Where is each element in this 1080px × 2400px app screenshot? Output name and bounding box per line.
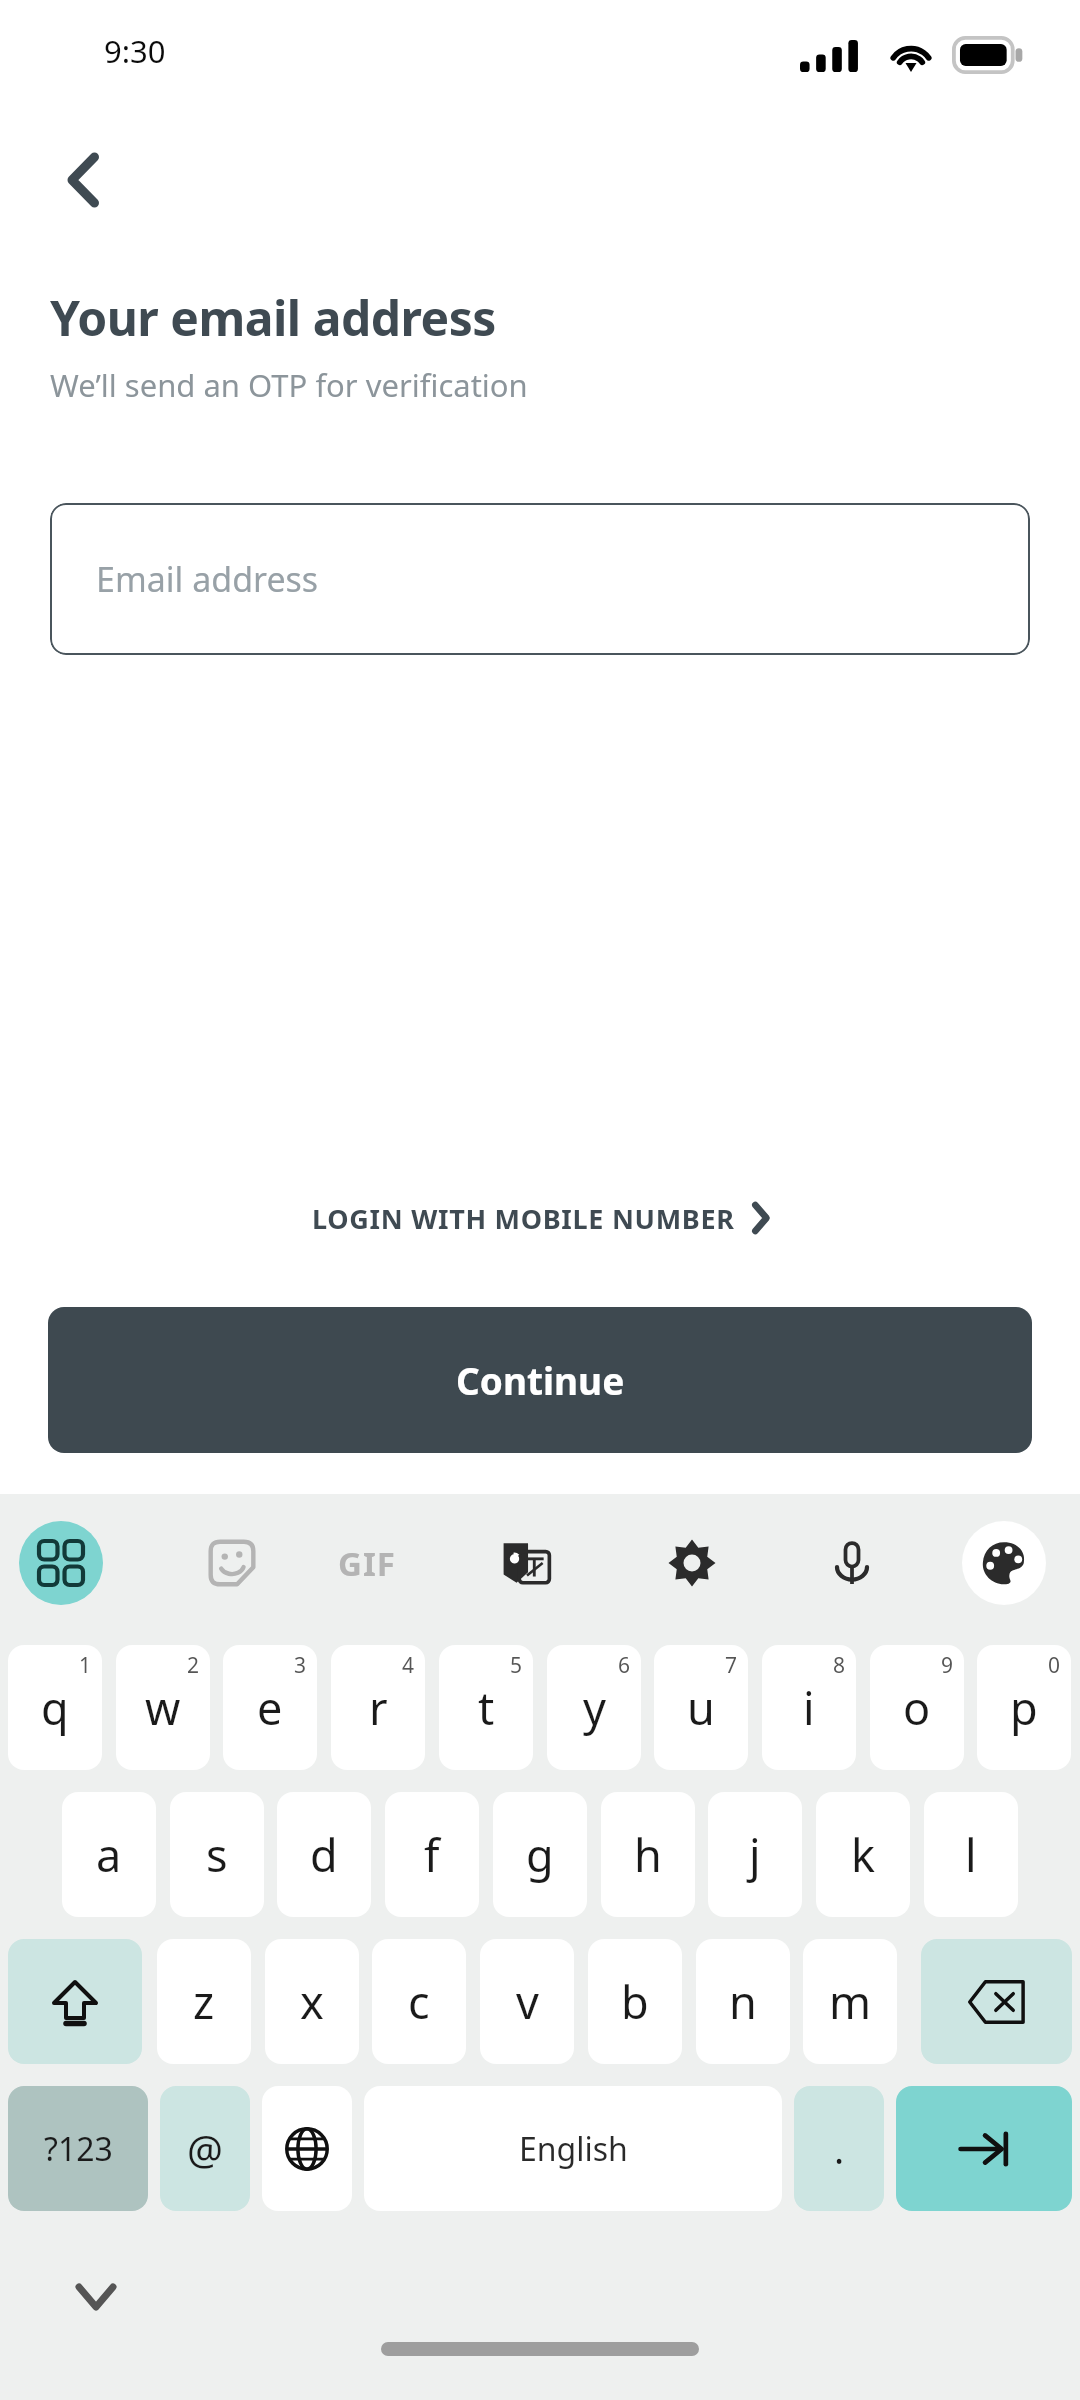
button[interactable]: r: [331, 1645, 425, 1770]
staticText: 5: [510, 1651, 523, 1680]
button[interactable]: Settings: [650, 1521, 734, 1605]
button[interactable]: Stickers: [190, 1521, 274, 1605]
staticText: 2: [187, 1651, 200, 1680]
staticText: w: [145, 1677, 181, 1738]
staticText: y: [583, 1677, 606, 1738]
button[interactable]: u: [654, 1645, 748, 1770]
staticText: f: [424, 1824, 440, 1885]
staticText: q: [41, 1677, 69, 1738]
staticText: @: [187, 2122, 223, 2176]
staticText: English: [519, 2127, 628, 2171]
staticText: k: [851, 1824, 876, 1885]
button[interactable]: i: [762, 1645, 856, 1770]
button[interactable]: v: [480, 1939, 574, 2064]
staticText: i: [803, 1677, 815, 1738]
button[interactable]: z: [157, 1939, 251, 2064]
staticText: 1: [79, 1651, 92, 1680]
staticText: 9: [941, 1651, 954, 1680]
button[interactable]: q: [8, 1645, 102, 1770]
button[interactable]: Translate: [485, 1521, 569, 1605]
button[interactable]: GIF: [325, 1521, 409, 1605]
staticText: 7: [725, 1651, 738, 1680]
button[interactable]: m: [803, 1939, 897, 2064]
button[interactable]: Hide keyboard: [60, 2261, 132, 2333]
staticText: d: [310, 1824, 338, 1885]
button[interactable]: w: [116, 1645, 210, 1770]
button[interactable]: Backspace: [921, 1939, 1072, 2064]
staticText: j: [749, 1824, 761, 1885]
button[interactable]: p: [977, 1645, 1071, 1770]
staticText: x: [300, 1971, 324, 2032]
staticText: h: [634, 1824, 662, 1885]
button[interactable]: t: [439, 1645, 533, 1770]
button[interactable]: x: [265, 1939, 359, 2064]
button[interactable]: Email address: [50, 503, 1030, 655]
staticText: 6: [618, 1651, 631, 1680]
button[interactable]: Theme: [962, 1521, 1046, 1605]
button[interactable]: f: [385, 1792, 479, 1917]
button[interactable]: .: [794, 2086, 884, 2211]
button[interactable]: LOGIN WITH MOBILE NUMBER: [0, 1185, 1080, 1251]
staticText: u: [687, 1677, 715, 1738]
button[interactable]: s: [170, 1792, 264, 1917]
button[interactable]: Shift: [8, 1939, 142, 2064]
staticText: Your email address: [50, 285, 496, 350]
button[interactable]: n: [696, 1939, 790, 2064]
staticText: GIF: [338, 1541, 396, 1586]
staticText: g: [526, 1824, 554, 1885]
staticText: .: [834, 2123, 845, 2175]
staticText: ?123: [44, 2127, 113, 2171]
button[interactable]: @: [160, 2086, 250, 2211]
staticText: LOGIN WITH MOBILE NUMBER: [312, 1200, 735, 1237]
button[interactable]: l: [924, 1792, 1018, 1917]
button[interactable]: k: [816, 1792, 910, 1917]
staticText: Email address: [96, 556, 319, 602]
staticText: m: [829, 1971, 872, 2032]
staticText: v: [516, 1971, 539, 2032]
staticText: p: [1010, 1677, 1038, 1738]
button[interactable]: Enter: [896, 2086, 1072, 2211]
staticText: 3: [294, 1651, 307, 1680]
button[interactable]: j: [708, 1792, 802, 1917]
staticText: r: [369, 1677, 388, 1738]
staticText: n: [729, 1971, 757, 2032]
button[interactable]: Change language: [262, 2086, 352, 2211]
button[interactable]: Back: [40, 136, 128, 224]
button[interactable]: ?123: [8, 2086, 148, 2211]
staticText: s: [206, 1824, 228, 1885]
staticText: Continue: [456, 1355, 625, 1405]
staticText: z: [193, 1971, 215, 2032]
staticText: o: [903, 1677, 931, 1738]
button[interactable]: h: [601, 1792, 695, 1917]
button[interactable]: English: [364, 2086, 782, 2211]
staticText: t: [478, 1677, 495, 1738]
staticText: We’ll send an OTP for verification: [50, 364, 528, 406]
button[interactable]: Emoji: [19, 1521, 103, 1605]
staticText: a: [96, 1824, 122, 1885]
staticText: b: [621, 1971, 649, 2032]
staticText: 8: [833, 1651, 846, 1680]
button[interactable]: b: [588, 1939, 682, 2064]
staticText: l: [965, 1824, 977, 1885]
button[interactable]: y: [547, 1645, 641, 1770]
button[interactable]: Voice input: [810, 1521, 894, 1605]
staticText: 4: [402, 1651, 415, 1680]
staticText: e: [257, 1677, 283, 1738]
button[interactable]: Continue: [48, 1307, 1032, 1453]
button[interactable]: e: [223, 1645, 317, 1770]
button[interactable]: c: [372, 1939, 466, 2064]
button[interactable]: a: [62, 1792, 156, 1917]
staticText: 0: [1048, 1651, 1061, 1680]
staticText: 9:30: [104, 30, 166, 72]
button[interactable]: o: [870, 1645, 964, 1770]
button[interactable]: d: [277, 1792, 371, 1917]
staticText: c: [408, 1971, 430, 2032]
button[interactable]: g: [493, 1792, 587, 1917]
